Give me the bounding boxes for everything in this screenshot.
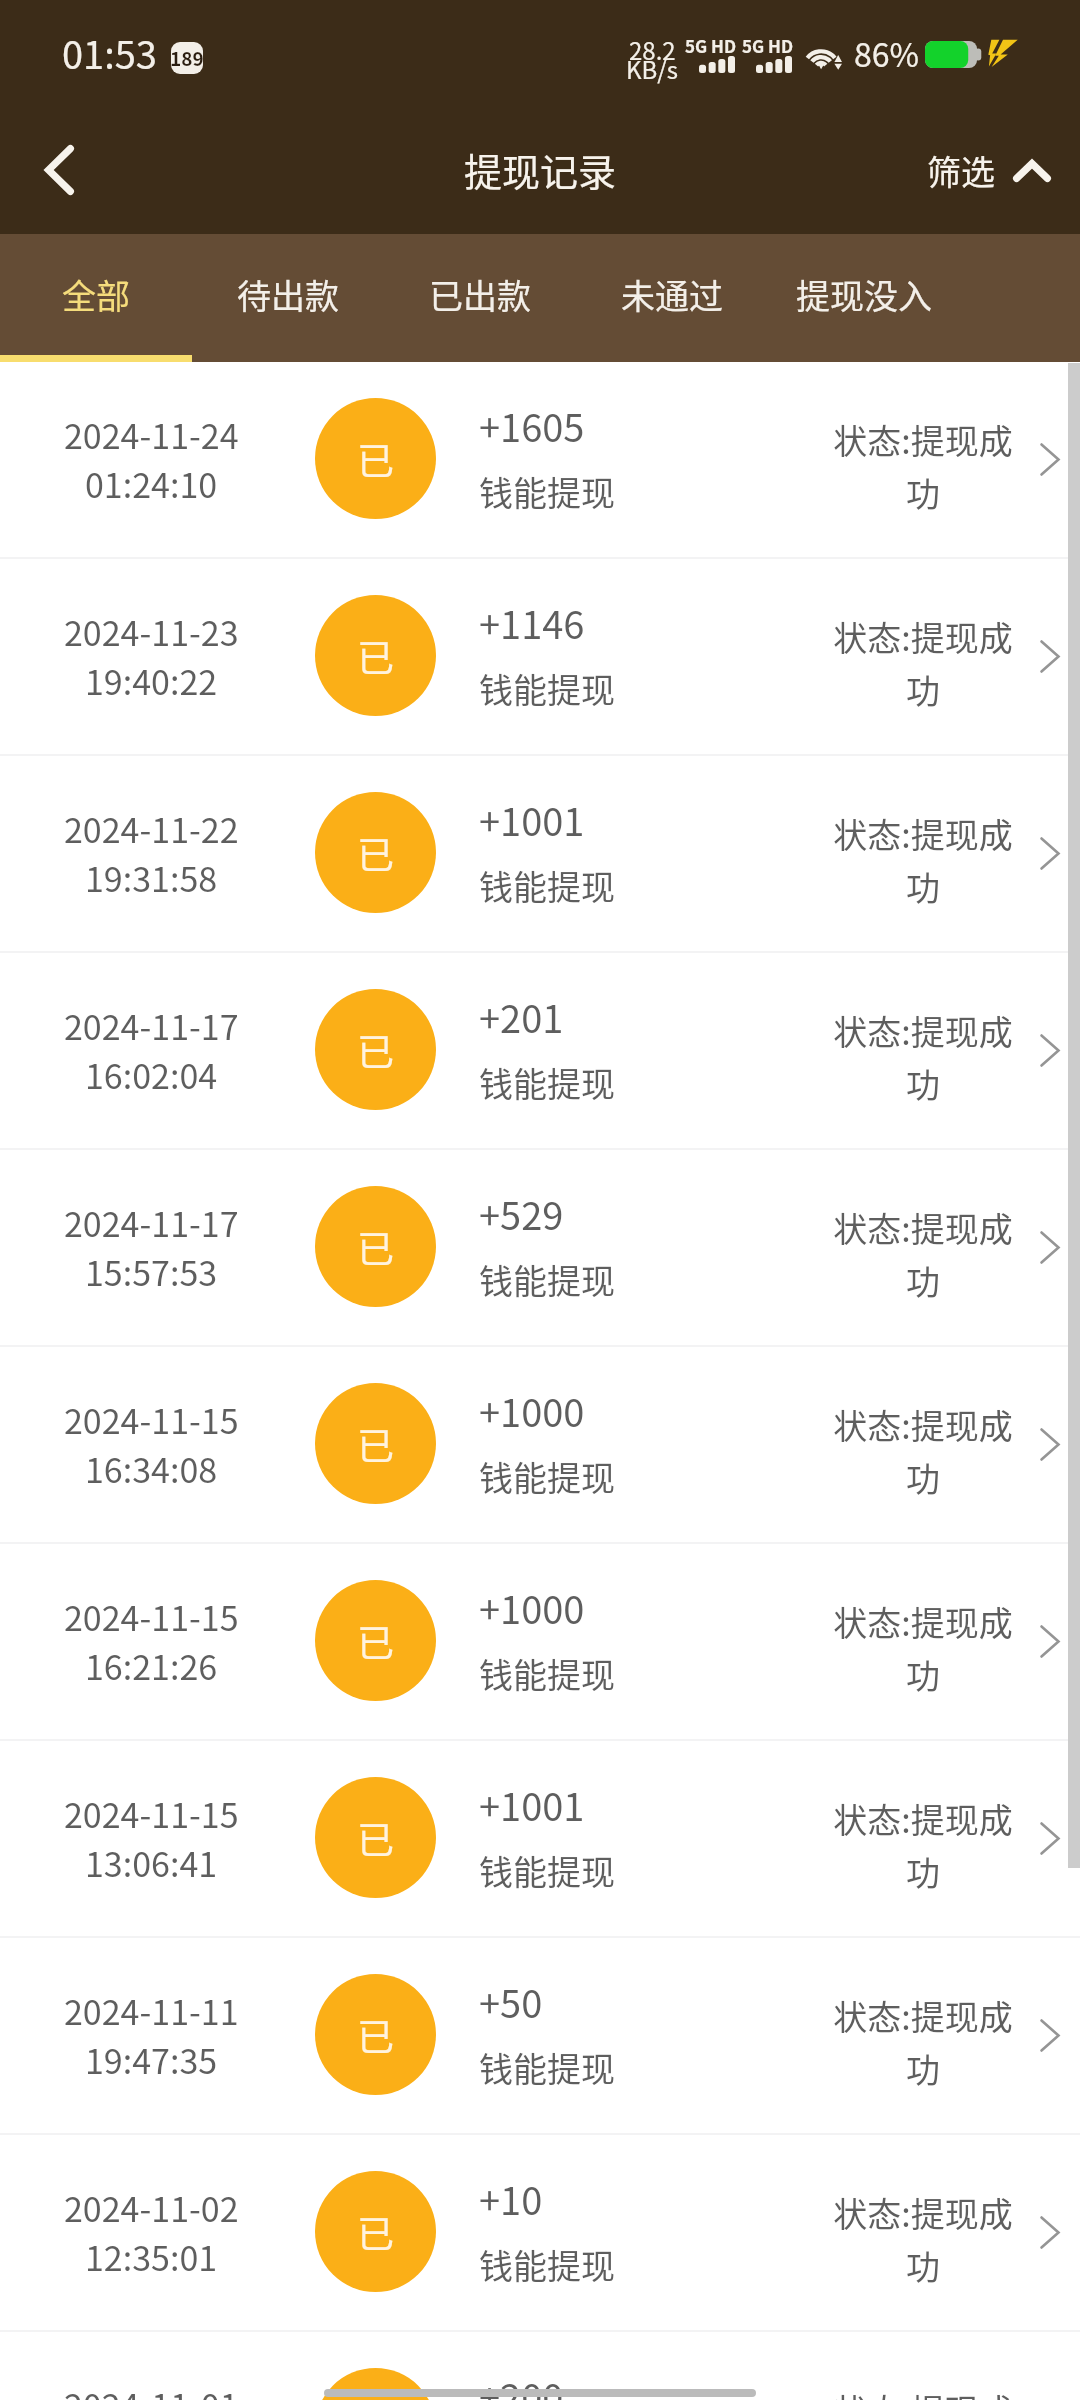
button[interactable]: 未通过 <box>576 234 768 362</box>
staticText: 5G HD <box>685 33 737 58</box>
staticText: 19:47:35 <box>85 2035 218 2084</box>
staticText: 状态:提现成功 <box>832 1400 1014 1502</box>
button[interactable]: 2024-11-24 <box>0 362 1080 557</box>
staticText: 已 <box>357 2008 394 2062</box>
staticText: 16:34:08 <box>85 1444 218 1493</box>
staticText: 状态:提现成功 <box>832 1597 1014 1699</box>
staticText: 01:53 <box>62 25 157 80</box>
staticText: 待出款 <box>237 270 339 319</box>
staticText: 钱能提现 <box>479 664 615 713</box>
button[interactable]: Back <box>14 125 104 215</box>
button[interactable]: 已出款 <box>384 234 576 362</box>
staticText: 已 <box>357 1023 394 1077</box>
button[interactable]: 2024-11-15 <box>0 1347 1080 1542</box>
staticText: 2024-11-02 <box>64 2183 239 2232</box>
staticText: +201 <box>479 989 564 1044</box>
staticText: 已 <box>357 432 394 486</box>
button[interactable]: 提现没入 <box>768 234 960 362</box>
staticText: 189 <box>171 44 203 72</box>
staticText: 状态:提现成功 <box>832 612 1014 714</box>
staticText: 状态:提现成功 <box>832 415 1014 517</box>
staticText: 状态:提现成功 <box>832 809 1014 911</box>
staticText: 钱能提现 <box>479 1058 615 1107</box>
staticText: 提现记录 <box>464 142 617 197</box>
staticText: +200 <box>479 2368 564 2400</box>
staticText: 全部 <box>62 270 130 319</box>
button[interactable]: 2024-11-15 <box>0 1741 1080 1936</box>
staticText: 13:06:41 <box>85 1838 218 1887</box>
staticText: 16:02:04 <box>85 1050 218 1099</box>
staticText: +1605 <box>479 398 585 453</box>
staticText: 2024-11-23 <box>64 607 239 656</box>
staticText: 筛选 <box>927 146 995 195</box>
staticText: 钱能提现 <box>479 467 615 516</box>
staticText: +10 <box>479 2171 543 2226</box>
button[interactable]: 2024-11-15 <box>0 1544 1080 1739</box>
button[interactable]: 2024-11-17 <box>0 953 1080 1148</box>
staticText: +1146 <box>479 595 585 650</box>
staticText: +1000 <box>479 1383 585 1438</box>
staticText: 28.2 <box>629 32 676 67</box>
staticText: 2024-11-15 <box>64 1395 239 1444</box>
button[interactable]: 2024-11-11 <box>0 1938 1080 2133</box>
staticText: 钱能提现 <box>479 1452 615 1501</box>
staticText: 状态:提现成功 <box>832 1991 1014 2093</box>
staticText: 钱能提现 <box>479 861 615 910</box>
staticText: +1000 <box>479 1580 585 1635</box>
staticText: 19:40:22 <box>85 656 218 705</box>
staticText: 16:21:26 <box>85 1641 218 1690</box>
button[interactable]: 2024-11-01 <box>0 2332 1080 2400</box>
button[interactable]: 2024-11-17 <box>0 1150 1080 1345</box>
staticText: 19:31:58 <box>85 853 218 902</box>
staticText: 已出款 <box>429 270 531 319</box>
staticText: 12:35:01 <box>85 2232 218 2281</box>
staticText: 已 <box>357 2205 394 2259</box>
staticText: 已 <box>357 1811 394 1865</box>
staticText: 提现没入 <box>796 270 932 319</box>
staticText: 钱能提现 <box>479 1255 615 1304</box>
staticText: 已 <box>357 629 394 683</box>
staticText: 2024-11-24 <box>64 410 239 459</box>
staticText: 钱能提现 <box>479 1846 615 1895</box>
staticText: 2024-11-17 <box>64 1198 239 1247</box>
staticText: +50 <box>479 1974 543 2029</box>
staticText: +1001 <box>479 792 585 847</box>
button[interactable]: 待出款 <box>192 234 384 362</box>
staticText: 状态:提现成功 <box>832 1203 1014 1305</box>
staticText: 未通过 <box>621 270 723 319</box>
staticText: 2024-11-17 <box>64 1001 239 1050</box>
button[interactable]: 2024-11-22 <box>0 756 1080 951</box>
staticText: 钱能提现 <box>479 1649 615 1698</box>
staticText: 状态:提现成功 <box>832 1794 1014 1896</box>
staticText: 2024-11-15 <box>64 1789 239 1838</box>
staticText: +1001 <box>479 1777 585 1832</box>
button[interactable]: 2024-11-02 <box>0 2135 1080 2330</box>
staticText: 已 <box>357 1220 394 1274</box>
staticText: 86% <box>854 30 919 76</box>
staticText: 已 <box>357 826 394 880</box>
button[interactable]: 全部 <box>0 234 192 362</box>
staticText: KB/s <box>626 51 678 86</box>
button[interactable]: 2024-11-23 <box>0 559 1080 754</box>
staticText: 状态:提现成功 <box>832 2188 1014 2290</box>
staticText: 15:57:53 <box>85 1247 218 1296</box>
staticText: 01:24:10 <box>85 459 218 508</box>
staticText: 2024-11-15 <box>64 1592 239 1641</box>
staticText: 钱能提现 <box>479 2043 615 2092</box>
button[interactable]: 筛选 <box>924 134 1054 207</box>
staticText: 已 <box>357 1417 394 1471</box>
staticText: 状态:提现成功 <box>832 2385 1014 2400</box>
staticText: 5G HD <box>742 33 794 58</box>
staticText: 2024-11-22 <box>64 804 239 853</box>
staticText: 2024-11-01 <box>64 2380 239 2400</box>
staticText: 钱能提现 <box>479 2240 615 2289</box>
staticText: 状态:提现成功 <box>832 1006 1014 1108</box>
staticText: 已 <box>357 1614 394 1668</box>
staticText: 2024-11-11 <box>64 1986 239 2035</box>
staticText: +529 <box>479 1186 564 1241</box>
